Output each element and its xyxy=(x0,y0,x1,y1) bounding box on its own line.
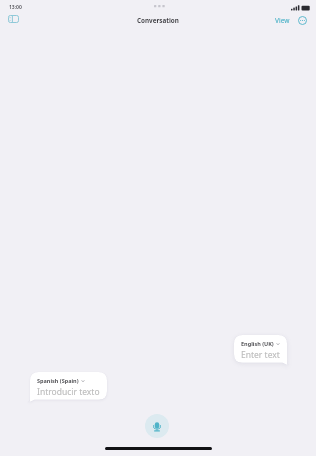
button[interactable]: Show sidebar xyxy=(4,10,22,28)
staticText: Enter text xyxy=(241,349,280,361)
staticText: 13:00 xyxy=(9,4,22,11)
staticText: View xyxy=(275,16,290,25)
staticText: Conversation xyxy=(137,16,179,25)
staticText: Spanish (Spain) xyxy=(37,377,79,384)
button[interactable]: View xyxy=(273,16,292,25)
button[interactable]: Microphone xyxy=(145,414,169,438)
button[interactable]: More options xyxy=(297,15,307,25)
button[interactable]: Spanish (Spain) xyxy=(30,372,107,402)
staticText: Introducir texto xyxy=(37,386,100,398)
button[interactable]: English (UK) xyxy=(234,335,287,365)
staticText: English (UK) xyxy=(241,340,274,347)
